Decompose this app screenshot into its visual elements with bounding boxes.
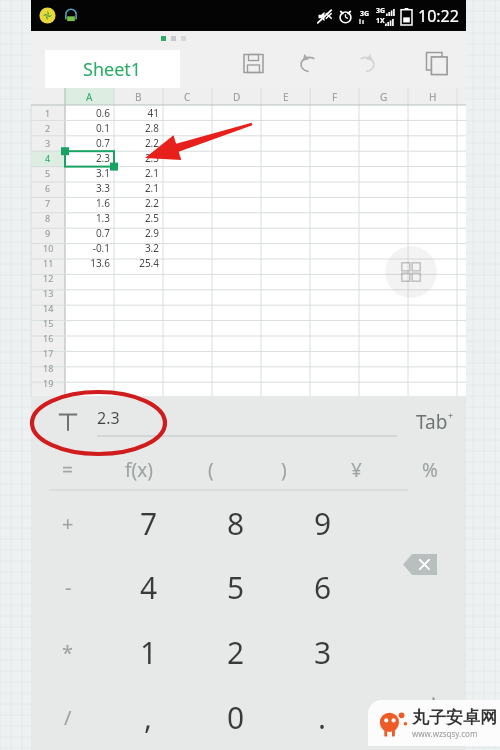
button[interactable]: Redo bbox=[346, 44, 384, 82]
button[interactable]: 3 bbox=[31, 135, 65, 150]
button[interactable]: G bbox=[359, 88, 408, 105]
button[interactable]: 3 bbox=[279, 620, 366, 685]
button[interactable]: 2.3 bbox=[114, 150, 159, 165]
button[interactable]: 0.1 bbox=[65, 120, 110, 135]
button[interactable]: 2 bbox=[31, 120, 65, 135]
button[interactable]: . bbox=[279, 685, 366, 750]
button[interactable]: 17 bbox=[31, 345, 65, 360]
button[interactable]: 18 bbox=[31, 360, 65, 375]
button[interactable] bbox=[114, 375, 159, 390]
button[interactable]: 6 bbox=[31, 180, 65, 195]
button[interactable] bbox=[114, 360, 159, 375]
button[interactable]: 2.5 bbox=[114, 210, 159, 225]
button[interactable]: ) bbox=[247, 448, 320, 491]
button[interactable]: 14 bbox=[31, 300, 65, 315]
button[interactable]: = bbox=[31, 448, 103, 491]
button[interactable]: 3.2 bbox=[114, 240, 159, 255]
button[interactable]: 1.3 bbox=[65, 210, 110, 225]
button[interactable] bbox=[65, 330, 110, 345]
button[interactable] bbox=[114, 285, 159, 300]
button[interactable]: F bbox=[310, 88, 359, 105]
button[interactable]: D bbox=[212, 88, 261, 105]
button[interactable] bbox=[65, 285, 110, 300]
button[interactable]: E bbox=[261, 88, 310, 105]
button[interactable]: 2.9 bbox=[114, 225, 159, 240]
button[interactable]: ( bbox=[175, 448, 247, 491]
button[interactable]: A bbox=[65, 88, 114, 105]
button[interactable]: Save bbox=[234, 44, 272, 82]
staticText: * bbox=[62, 639, 74, 666]
button[interactable]: H bbox=[408, 88, 457, 105]
button[interactable]: Undo bbox=[290, 44, 328, 82]
button[interactable]: C bbox=[163, 88, 212, 105]
button[interactable]: 2.2 bbox=[114, 135, 159, 150]
button[interactable]: 16 bbox=[31, 330, 65, 345]
button[interactable]: 5 bbox=[192, 555, 279, 620]
button[interactable]: 0.7 bbox=[65, 135, 110, 150]
button[interactable]: 8 bbox=[31, 210, 65, 225]
button[interactable] bbox=[114, 300, 159, 315]
button[interactable]: ¥ bbox=[320, 448, 393, 491]
button[interactable]: , bbox=[105, 685, 192, 750]
button[interactable]: 2 bbox=[192, 620, 279, 685]
button[interactable]: 1.6 bbox=[65, 195, 110, 210]
staticText: 2.1 bbox=[144, 181, 159, 195]
button[interactable]: 25.4 bbox=[114, 255, 159, 270]
button[interactable]: 7 bbox=[31, 195, 65, 210]
staticText: 6 bbox=[314, 567, 332, 608]
button[interactable]: Tools bbox=[385, 246, 437, 298]
button[interactable] bbox=[65, 375, 110, 390]
button[interactable] bbox=[65, 270, 110, 285]
button[interactable] bbox=[114, 315, 159, 330]
button[interactable]: 6 bbox=[279, 555, 366, 620]
button[interactable]: 12 bbox=[31, 270, 65, 285]
button[interactable]: Enter bbox=[396, 688, 444, 722]
button[interactable]: Sheet1 bbox=[45, 50, 180, 88]
button[interactable]: 11 bbox=[31, 255, 65, 270]
button[interactable]: Backspace bbox=[398, 549, 442, 579]
button[interactable]: 15 bbox=[31, 315, 65, 330]
button[interactable]: B bbox=[114, 88, 163, 105]
button[interactable]: 1 bbox=[31, 105, 65, 120]
button[interactable]: f(x) bbox=[103, 448, 175, 491]
button[interactable]: / bbox=[31, 685, 105, 750]
button[interactable]: 0.7 bbox=[65, 225, 110, 240]
button[interactable]: 9 bbox=[279, 491, 366, 555]
button[interactable]: 2.1 bbox=[114, 165, 159, 180]
button[interactable]: 13.6 bbox=[65, 255, 110, 270]
button[interactable]: 3.3 bbox=[65, 180, 110, 195]
button[interactable]: Sheets bbox=[418, 44, 456, 82]
button[interactable] bbox=[65, 345, 110, 360]
button[interactable] bbox=[114, 345, 159, 360]
button[interactable]: 3.1 bbox=[65, 165, 110, 180]
button[interactable]: + bbox=[31, 491, 105, 555]
button[interactable] bbox=[65, 315, 110, 330]
button[interactable]: 5 bbox=[31, 165, 65, 180]
button[interactable]: % bbox=[393, 448, 466, 491]
button[interactable]: 2.1 bbox=[114, 180, 159, 195]
button[interactable]: 4 bbox=[105, 555, 192, 620]
button[interactable]: 10 bbox=[31, 240, 65, 255]
button[interactable] bbox=[65, 300, 110, 315]
button[interactable]: -0.1 bbox=[65, 240, 110, 255]
button[interactable] bbox=[114, 330, 159, 345]
button[interactable]: 13 bbox=[31, 285, 65, 300]
button[interactable]: 2.2 bbox=[114, 195, 159, 210]
button[interactable]: Tab bbox=[416, 409, 454, 435]
button[interactable]: 4 bbox=[31, 150, 65, 165]
button[interactable]: 7 bbox=[105, 491, 192, 555]
button[interactable]: 0.6 bbox=[65, 105, 110, 120]
button[interactable]: 8 bbox=[192, 491, 279, 555]
button[interactable]: 0 bbox=[192, 685, 279, 750]
button[interactable]: 9 bbox=[31, 225, 65, 240]
button[interactable]: 1 bbox=[105, 620, 192, 685]
button[interactable]: * bbox=[31, 620, 105, 685]
button[interactable] bbox=[114, 270, 159, 285]
button[interactable]: 2.3 bbox=[65, 150, 110, 165]
button[interactable]: 2.8 bbox=[114, 120, 159, 135]
staticText: 3 bbox=[314, 632, 332, 673]
button[interactable]: 41 bbox=[114, 105, 159, 120]
button[interactable] bbox=[65, 360, 110, 375]
button[interactable]: 19 bbox=[31, 375, 65, 390]
